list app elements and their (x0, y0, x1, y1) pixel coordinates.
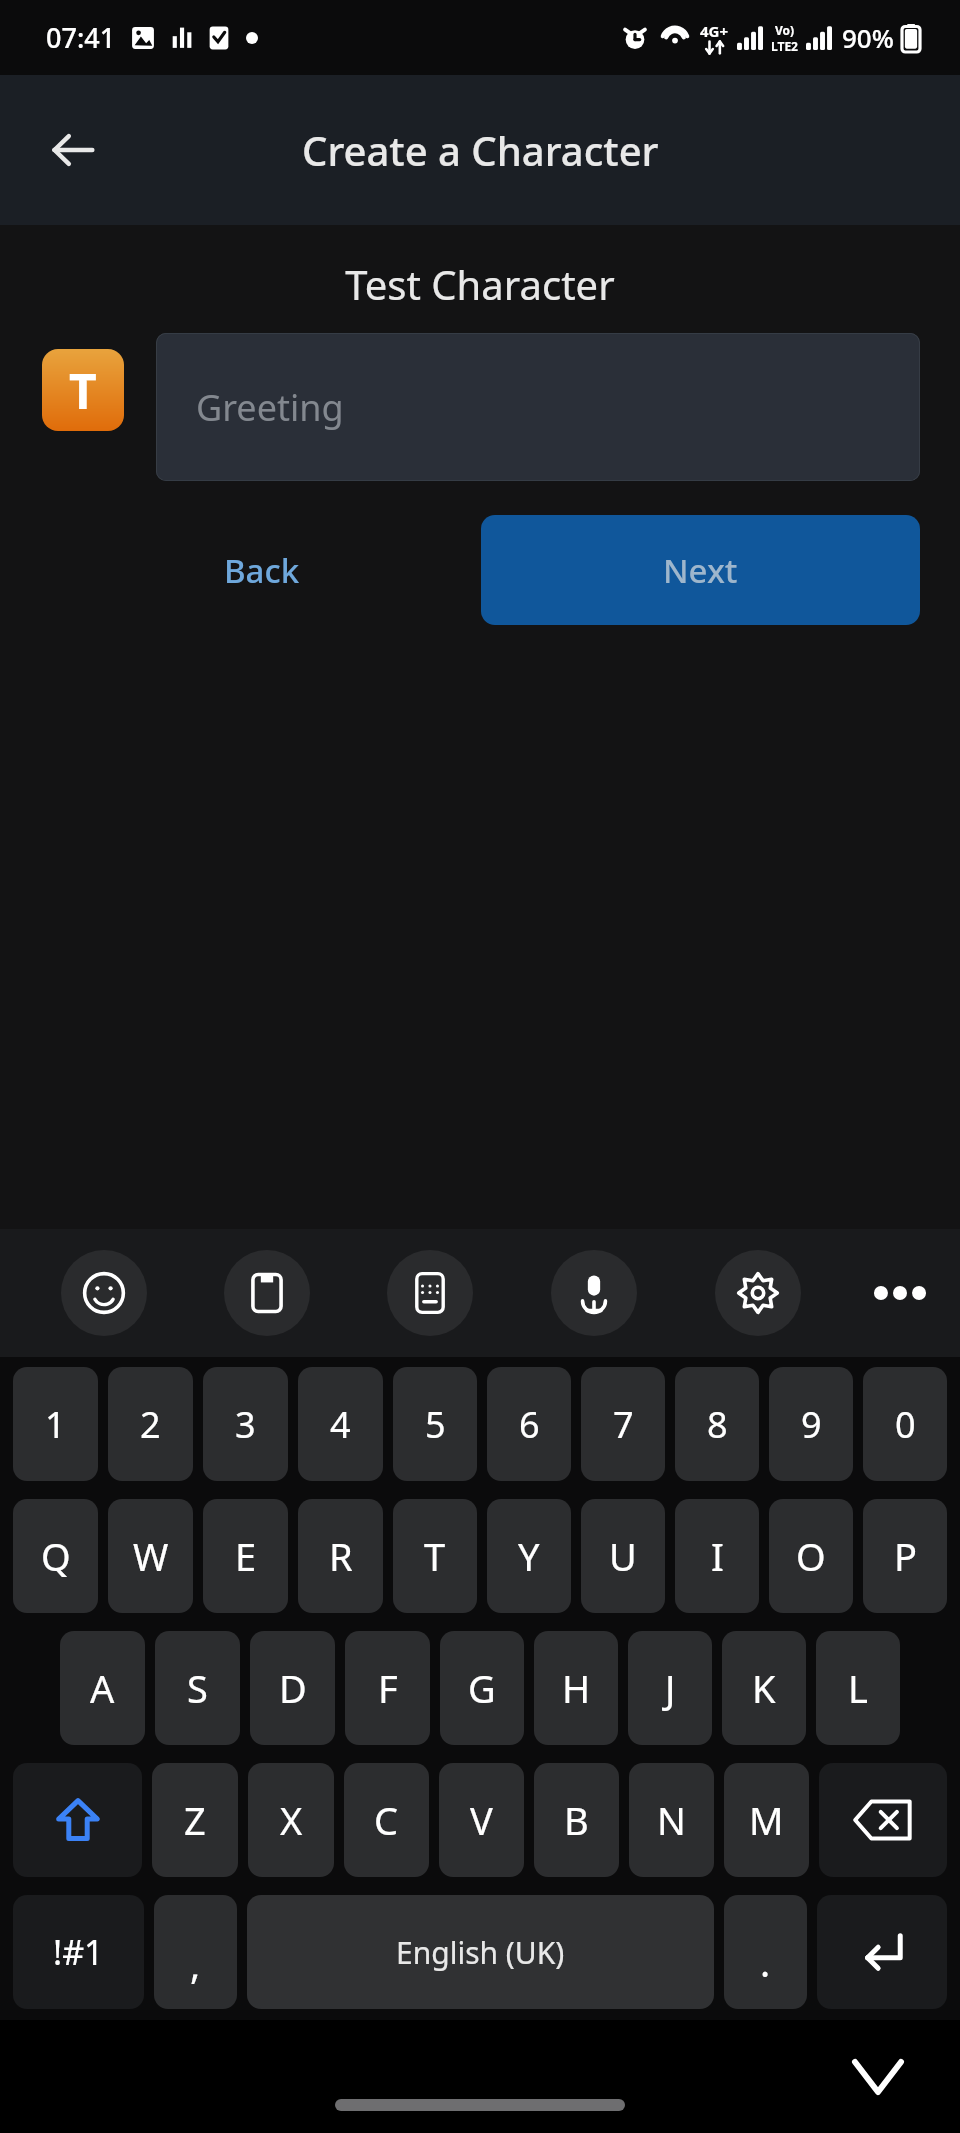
button[interactable]: 7 (581, 1367, 665, 1481)
button[interactable]: N (629, 1763, 714, 1877)
staticText: V (470, 1794, 493, 1846)
button[interactable]: B (534, 1763, 619, 1877)
button[interactable]: 6 (487, 1367, 571, 1481)
staticText: , (190, 1938, 201, 1990)
button[interactable]: Greeting (156, 333, 920, 481)
staticText: English (UK) (396, 1932, 565, 1973)
staticText: L (848, 1662, 868, 1714)
button[interactable]: Y (487, 1499, 571, 1613)
button[interactable]: K (722, 1631, 806, 1745)
button[interactable]: Z (152, 1763, 238, 1877)
button[interactable]: Hide keyboard (838, 2037, 918, 2117)
staticText: . (760, 1936, 771, 1988)
staticText: 4 (330, 1400, 351, 1449)
staticText: Y (518, 1530, 540, 1582)
staticText: LTE2 (771, 38, 798, 54)
button[interactable]: U (581, 1499, 665, 1613)
button[interactable]: Keyboard modes (387, 1250, 473, 1336)
staticText: D (279, 1662, 307, 1714)
staticText: 5 (425, 1400, 446, 1449)
staticText: 8 (707, 1400, 728, 1449)
button[interactable]: Next (481, 515, 920, 625)
button[interactable]: O (769, 1499, 853, 1613)
staticText: !#1 (53, 1929, 104, 1975)
staticText: B (564, 1794, 589, 1846)
staticText: Vo) (775, 22, 795, 38)
button[interactable]: Emoji (61, 1250, 147, 1336)
staticText: X (280, 1794, 303, 1846)
staticText: 7 (613, 1400, 634, 1449)
button[interactable]: P (863, 1499, 947, 1613)
button[interactable]: !#1 (13, 1895, 144, 2009)
staticText: 0 (895, 1400, 916, 1449)
button[interactable]: I (675, 1499, 759, 1613)
staticText: Z (184, 1794, 206, 1846)
staticText: H (562, 1662, 591, 1714)
button[interactable]: , (154, 1895, 237, 2009)
button[interactable]: A (60, 1631, 145, 1745)
button[interactable]: Settings (715, 1250, 801, 1336)
staticText: K (752, 1662, 776, 1714)
button[interactable]: M (724, 1763, 809, 1877)
button[interactable]: C (344, 1763, 429, 1877)
button[interactable]: Backspace (819, 1763, 947, 1877)
button[interactable]: Back (30, 107, 116, 193)
staticText: 07:41 (46, 19, 116, 56)
button[interactable]: 3 (203, 1367, 288, 1481)
button[interactable]: . (724, 1895, 807, 2009)
button[interactable]: G (440, 1631, 524, 1745)
staticText: I (711, 1530, 724, 1582)
button[interactable]: 2 (108, 1367, 193, 1481)
staticText: U (609, 1530, 637, 1582)
staticText: Q (41, 1530, 71, 1582)
button[interactable]: 4 (298, 1367, 383, 1481)
button[interactable]: 5 (393, 1367, 477, 1481)
staticText: 2 (140, 1400, 161, 1449)
staticText: O (796, 1530, 826, 1582)
button[interactable]: Back (42, 515, 481, 625)
button[interactable]: S (155, 1631, 240, 1745)
button[interactable]: Space (247, 1895, 714, 2009)
staticText: W (133, 1530, 169, 1582)
button[interactable]: Voice input (551, 1250, 637, 1336)
button[interactable]: 1 (13, 1367, 98, 1481)
staticText: 6 (519, 1400, 540, 1449)
button[interactable]: D (250, 1631, 335, 1745)
button[interactable]: E (203, 1499, 288, 1613)
button[interactable]: Shift (13, 1763, 142, 1877)
button[interactable]: R (298, 1499, 383, 1613)
button[interactable]: X (248, 1763, 334, 1877)
button[interactable]: F (345, 1631, 430, 1745)
staticText: 90% (842, 20, 894, 55)
staticText: Create a Character (302, 123, 659, 177)
button[interactable]: Enter (817, 1895, 947, 2009)
staticText: Greeting (196, 383, 344, 432)
staticText: 9 (801, 1400, 822, 1449)
button[interactable]: H (534, 1631, 618, 1745)
staticText: Test Character (0, 257, 960, 311)
button[interactable]: Character icon (42, 349, 124, 431)
staticText: C (374, 1794, 399, 1846)
staticText: 3 (235, 1400, 256, 1449)
button[interactable]: Q (13, 1499, 98, 1613)
button[interactable]: J (628, 1631, 712, 1745)
button[interactable]: 8 (675, 1367, 759, 1481)
staticText: G (468, 1662, 496, 1714)
button[interactable]: Clipboard (224, 1250, 310, 1336)
staticText: J (665, 1662, 676, 1714)
button[interactable]: More options (840, 1243, 960, 1343)
staticText: T (424, 1530, 446, 1582)
button[interactable]: W (108, 1499, 193, 1613)
button[interactable]: V (439, 1763, 524, 1877)
button[interactable]: T (393, 1499, 477, 1613)
button[interactable]: L (816, 1631, 900, 1745)
button[interactable]: 9 (769, 1367, 853, 1481)
staticText: 4G+ (700, 21, 729, 41)
button[interactable]: 0 (863, 1367, 947, 1481)
staticText: F (378, 1662, 398, 1714)
staticText: E (235, 1530, 257, 1582)
staticText: T (69, 358, 97, 423)
staticText: P (894, 1530, 917, 1582)
staticText: N (657, 1794, 686, 1846)
staticText: 1 (45, 1400, 66, 1449)
